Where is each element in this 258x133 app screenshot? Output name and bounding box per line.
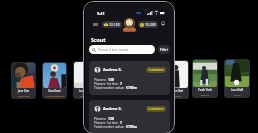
button[interactable]: Contattami — [146, 106, 166, 112]
button[interactable]: Contattami — [146, 67, 166, 73]
button[interactable]: Trova il tuo scout — [89, 45, 155, 54]
button[interactable]: Sara Rossi — [42, 62, 67, 99]
staticText: Contattami — [148, 107, 164, 111]
button[interactable]: 15.230 — [138, 21, 158, 28]
staticText: Players 1st tier: — [94, 81, 120, 85]
staticText: Players: — [94, 77, 108, 81]
staticText: 7 — [120, 81, 122, 85]
button[interactable]: Menu — [91, 20, 99, 28]
staticText: Attaccante — [12, 94, 35, 97]
staticText: 138 — [108, 116, 114, 120]
staticText: Difensore — [74, 94, 97, 97]
button[interactable]: Luca Gialli — [224, 59, 250, 98]
staticText: Sara Rossi — [43, 89, 66, 93]
staticText: Andrea S. — [103, 67, 122, 72]
button[interactable]: Paolo Verdi — [192, 59, 218, 98]
button[interactable]: 12.102 — [102, 21, 122, 28]
staticText: Paolo Verdi — [193, 88, 217, 92]
staticText: Total market value: — [94, 124, 126, 128]
staticText: Players: — [94, 116, 108, 120]
button[interactable]: Notifications — [159, 20, 166, 27]
staticText: Portiere — [165, 94, 188, 97]
staticText: Trova il tuo scout — [98, 47, 129, 52]
button[interactable]: Andrea S. — [89, 100, 170, 133]
button[interactable]: Andrea S. — [89, 61, 170, 95]
staticText: Andrea S. — [103, 106, 122, 111]
staticText: Marco Neri — [165, 89, 188, 93]
staticText: €700m — [126, 85, 138, 89]
staticText: Total market value: — [94, 85, 126, 89]
staticText: Luca Bruni — [74, 89, 97, 93]
button[interactable]: Marco Neri — [164, 60, 189, 99]
staticText: Filtri — [160, 47, 168, 52]
button[interactable]: Profile — [124, 18, 135, 29]
staticText: 138 — [108, 77, 114, 81]
button[interactable]: Luca Bruni — [73, 61, 98, 99]
staticText: Centrocampista — [43, 94, 66, 97]
staticText: Esterno — [193, 93, 217, 96]
staticText: Jane Doe — [12, 89, 35, 93]
staticText: Players 1st tier: — [94, 120, 120, 124]
button[interactable]: Jane Doe — [11, 62, 36, 99]
staticText: €700m — [126, 124, 138, 128]
button[interactable]: Filtri — [158, 45, 170, 54]
staticText: 15.230 — [145, 22, 156, 27]
staticText: 9:41 — [97, 11, 105, 16]
staticText: Luca Gialli — [225, 88, 249, 92]
staticText: 7 — [120, 120, 122, 124]
staticText: Punta — [225, 93, 249, 96]
staticText: 12.102 — [109, 22, 120, 27]
staticText: Scout — [91, 36, 106, 43]
staticText: Contattami — [148, 68, 164, 72]
